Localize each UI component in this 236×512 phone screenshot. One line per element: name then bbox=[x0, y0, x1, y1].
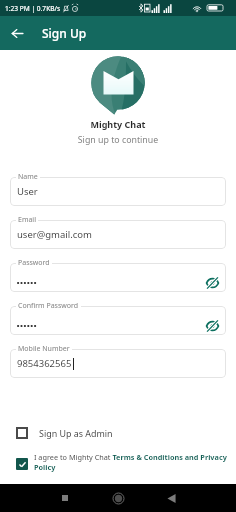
button[interactable]: Home bbox=[104, 484, 132, 512]
button[interactable]: Sign Up as Admin bbox=[16, 425, 220, 441]
staticText: user@gmail.com bbox=[17, 228, 92, 241]
button[interactable]: Toggle password visibility bbox=[204, 274, 221, 291]
staticText: Email bbox=[18, 215, 36, 225]
staticText: Password bbox=[18, 258, 50, 268]
staticText: Sign Up bbox=[42, 25, 87, 41]
staticText: User bbox=[17, 185, 38, 198]
staticText: 9854362565 bbox=[17, 357, 72, 370]
staticText: Mobile Number bbox=[18, 344, 70, 354]
staticText: Name bbox=[18, 172, 38, 182]
button[interactable]: I agree to Mighty Chat Terms & Condition… bbox=[16, 452, 228, 472]
staticText: I agree to Mighty Chat Terms & Condition… bbox=[34, 452, 228, 472]
button[interactable]: Recents bbox=[51, 484, 79, 512]
button[interactable]: Toggle password visibility bbox=[10, 306, 226, 335]
staticText: Sign up to continue bbox=[0, 134, 236, 146]
staticText: Confirm Password bbox=[18, 301, 79, 311]
button[interactable]: Back bbox=[157, 484, 185, 512]
staticText: Mighty Chat bbox=[0, 118, 236, 130]
button[interactable]: 9854362565 bbox=[10, 349, 226, 378]
button[interactable]: User bbox=[10, 177, 226, 206]
button[interactable]: Toggle password visibility bbox=[10, 263, 226, 292]
staticText: 1:23 PM | 0.7KB/s bbox=[5, 4, 61, 13]
button[interactable]: user@gmail.com bbox=[10, 220, 226, 249]
staticText: Sign Up as Admin bbox=[39, 427, 113, 439]
button[interactable]: Toggle password visibility bbox=[204, 317, 221, 334]
button[interactable]: Back bbox=[0, 16, 34, 50]
